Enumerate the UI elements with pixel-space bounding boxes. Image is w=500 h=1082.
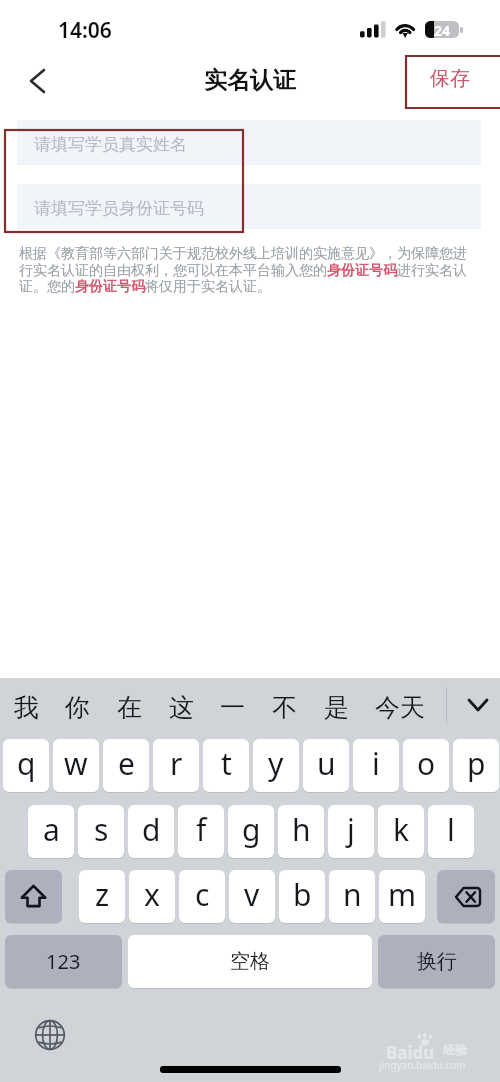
button[interactable]: q xyxy=(3,739,49,792)
staticText: 今天 xyxy=(375,692,425,723)
button[interactable]: b xyxy=(279,870,325,923)
staticText: v xyxy=(244,874,260,915)
staticText: s xyxy=(94,809,109,850)
button[interactable]: Switch keyboard xyxy=(32,1017,68,1053)
button[interactable]: 今天 xyxy=(368,680,432,736)
staticText: h xyxy=(292,809,311,850)
button[interactable]: c xyxy=(179,870,225,923)
button[interactable]: h xyxy=(278,805,324,858)
button[interactable]: t xyxy=(203,739,249,792)
button[interactable]: n xyxy=(329,870,375,923)
staticText: 换行 xyxy=(417,949,457,974)
staticText: y xyxy=(268,743,284,784)
button[interactable]: d xyxy=(128,805,174,858)
button[interactable]: 我 xyxy=(7,680,45,736)
button[interactable]: 换行 xyxy=(378,935,495,988)
staticText: k xyxy=(393,809,410,850)
button[interactable]: v xyxy=(229,870,275,923)
staticText: a xyxy=(43,809,60,850)
staticText: 实名认证 xyxy=(0,66,500,95)
staticText: jingyan.baidu.com xyxy=(379,1058,466,1072)
button[interactable]: Hide keyboard xyxy=(452,678,500,734)
staticText: i xyxy=(372,743,380,784)
staticText: u xyxy=(317,743,336,784)
button[interactable]: s xyxy=(78,805,124,858)
staticText: 24 xyxy=(434,21,451,38)
staticText: n xyxy=(343,874,362,915)
staticText: 在 xyxy=(117,692,142,723)
button[interactable]: 123 xyxy=(5,935,122,988)
staticText: 这 xyxy=(169,692,194,723)
button[interactable]: i xyxy=(353,739,399,792)
button[interactable]: 这 xyxy=(162,680,200,736)
staticText: 123 xyxy=(46,948,81,975)
staticText: 空格 xyxy=(230,949,270,974)
button[interactable]: Backspace xyxy=(437,870,495,923)
staticText: e xyxy=(118,743,135,784)
button[interactable]: g xyxy=(228,805,274,858)
button[interactable]: Back xyxy=(20,64,54,98)
staticText: f xyxy=(196,809,207,850)
staticText: 根据《教育部等六部门关于规范校外线上培训的实施意见》，为保障您进行实名认证的自由… xyxy=(19,245,478,295)
button[interactable]: j xyxy=(328,805,374,858)
button[interactable]: m xyxy=(379,870,425,923)
button[interactable]: 你 xyxy=(58,680,96,736)
staticText: 你 xyxy=(65,692,90,723)
staticText: j xyxy=(347,809,355,850)
button[interactable]: z xyxy=(79,870,125,923)
staticText: p xyxy=(467,743,486,784)
staticText: 一 xyxy=(220,692,245,723)
staticText: 14:06 xyxy=(58,16,112,45)
button[interactable]: 不 xyxy=(265,680,303,736)
button[interactable]: o xyxy=(403,739,449,792)
button[interactable]: 是 xyxy=(317,680,355,736)
staticText: c xyxy=(195,874,210,915)
staticText: o xyxy=(417,743,436,784)
button[interactable]: k xyxy=(378,805,424,858)
staticText: 是 xyxy=(324,692,349,723)
staticText: m xyxy=(388,874,417,915)
staticText: d xyxy=(142,809,161,850)
staticText: r xyxy=(170,743,183,784)
staticText: 经验 xyxy=(443,1042,467,1057)
button[interactable]: 在 xyxy=(110,680,148,736)
staticText: 我 xyxy=(14,692,39,723)
staticText: 请填写学员真实姓名 xyxy=(34,134,187,155)
button[interactable]: x xyxy=(129,870,175,923)
staticText: b xyxy=(293,874,312,915)
staticText: l xyxy=(447,809,455,850)
button[interactable]: 保存 xyxy=(430,66,470,91)
button[interactable]: u xyxy=(303,739,349,792)
button[interactable]: r xyxy=(153,739,199,792)
staticText: q xyxy=(17,743,36,784)
button[interactable]: y xyxy=(253,739,299,792)
button[interactable]: Shift xyxy=(5,870,62,923)
staticText: x xyxy=(144,874,160,915)
staticText: 保存 xyxy=(430,66,470,91)
button[interactable]: 一 xyxy=(213,680,251,736)
button[interactable]: 空格 xyxy=(128,935,372,988)
staticText: t xyxy=(221,743,232,784)
staticText: w xyxy=(64,743,88,784)
button[interactable]: e xyxy=(103,739,149,792)
staticText: 不 xyxy=(272,692,297,723)
button[interactable]: a xyxy=(28,805,74,858)
button[interactable]: l xyxy=(428,805,474,858)
staticText: z xyxy=(95,874,110,915)
button[interactable]: 请填写学员真实姓名 xyxy=(17,120,481,165)
staticText: Baidu xyxy=(386,1041,435,1064)
button[interactable]: f xyxy=(178,805,224,858)
button[interactable]: 请填写学员身份证号码 xyxy=(17,184,481,229)
staticText: g xyxy=(242,809,261,850)
button[interactable]: w xyxy=(53,739,99,792)
staticText: 请填写学员身份证号码 xyxy=(34,198,204,219)
button[interactable]: p xyxy=(453,739,499,792)
